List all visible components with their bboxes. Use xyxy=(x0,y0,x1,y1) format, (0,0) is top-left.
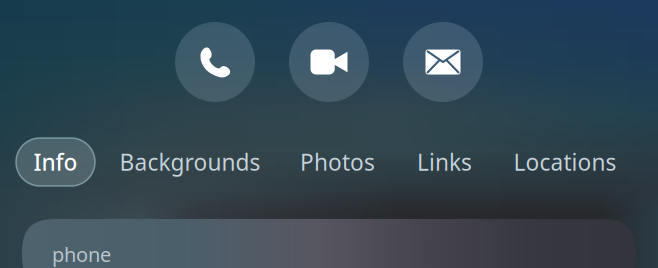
staticText: phone xyxy=(52,241,111,268)
button[interactable]: FaceTime xyxy=(289,22,369,102)
button[interactable]: Locations xyxy=(503,133,626,191)
staticText: Locations xyxy=(513,147,616,177)
button[interactable]: Photos xyxy=(290,133,385,191)
button[interactable]: Info xyxy=(16,138,95,186)
staticText: Info xyxy=(33,147,77,177)
button[interactable]: Backgrounds xyxy=(109,133,270,191)
button[interactable]: Mail xyxy=(403,22,483,102)
staticText: Photos xyxy=(300,147,375,177)
staticText: Links xyxy=(417,147,472,177)
button[interactable]: Call xyxy=(175,22,255,102)
button[interactable]: Links xyxy=(407,133,482,191)
staticText: Backgrounds xyxy=(119,147,260,177)
